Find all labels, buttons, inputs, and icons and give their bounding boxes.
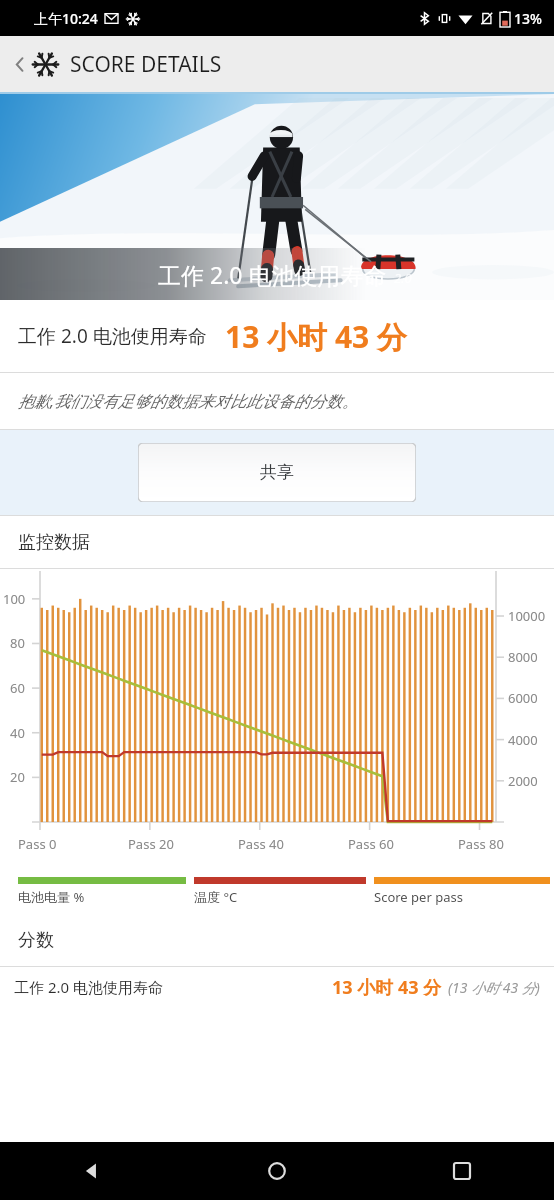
staticText: 13 小时 43 分 bbox=[332, 975, 442, 1000]
staticText: 共享 bbox=[260, 462, 294, 483]
staticText: 80 bbox=[10, 634, 25, 652]
staticText: Pass 20 bbox=[128, 835, 174, 853]
staticText: 2000 bbox=[508, 772, 538, 790]
staticText: 抱歉,我们没有足够的数据来对比此设备的分数。 bbox=[18, 390, 359, 412]
staticText: 工作 2.0 电池使用寿命 bbox=[158, 259, 387, 290]
button[interactable]: Back bbox=[0, 1142, 184, 1200]
button[interactable]: Home bbox=[184, 1142, 369, 1200]
staticText: 8000 bbox=[508, 648, 538, 666]
staticText: 2.0 bbox=[394, 269, 412, 287]
staticText: Pass 60 bbox=[348, 835, 394, 853]
staticText: 6000 bbox=[508, 689, 538, 707]
button[interactable]: 工作 2.0 电池使用寿命 bbox=[0, 967, 554, 1007]
staticText: 电池电量 % bbox=[18, 888, 85, 906]
staticText: 20 bbox=[10, 768, 25, 786]
button[interactable]: Recents bbox=[369, 1142, 554, 1200]
staticText: Score per pass bbox=[374, 888, 463, 906]
staticText: 60 bbox=[10, 679, 25, 697]
button[interactable]: Back bbox=[6, 36, 32, 92]
staticText: 13% bbox=[514, 9, 542, 28]
staticText: Pass 80 bbox=[458, 835, 504, 853]
staticText: 温度 °C bbox=[194, 888, 238, 906]
staticText: Pass 40 bbox=[238, 835, 284, 853]
staticText: 10000 bbox=[508, 607, 546, 625]
staticText: 工作 2.0 电池使用寿命 bbox=[14, 977, 163, 997]
staticText: SCORE DETAILS bbox=[70, 50, 222, 79]
staticText: 上午10:24 bbox=[34, 9, 98, 28]
staticText: 分数 bbox=[18, 929, 54, 952]
button[interactable]: 工作 2.0 电池使用寿命 bbox=[0, 300, 554, 372]
button[interactable]: 共享 bbox=[138, 443, 416, 502]
staticText: 4000 bbox=[508, 731, 538, 749]
staticText: 工作 2.0 电池使用寿命 bbox=[18, 323, 207, 349]
staticText: (13 小时 43 分) bbox=[448, 978, 540, 997]
staticText: 监控数据 bbox=[18, 531, 90, 554]
staticText: 40 bbox=[10, 724, 25, 742]
staticText: 100 bbox=[3, 590, 26, 608]
staticText: 13 小时 43 分 bbox=[225, 316, 408, 357]
staticText: Pass 0 bbox=[18, 835, 57, 853]
